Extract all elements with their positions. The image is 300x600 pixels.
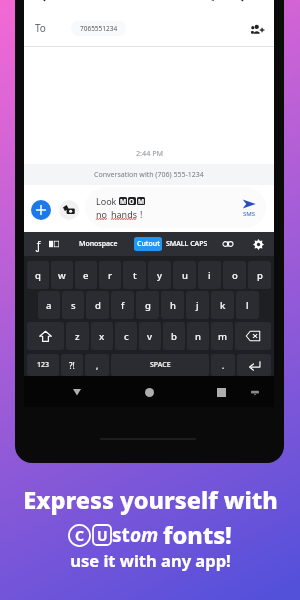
button[interactable]: Enter [237,354,271,376]
button[interactable]: c [115,322,137,350]
button[interactable]: x [91,322,113,350]
staticText: Look [96,195,119,207]
staticText: y [157,269,163,282]
button[interactable]: g [136,291,159,319]
button[interactable]: d [86,291,109,319]
button[interactable]: Backspace [235,322,271,350]
staticText: om [130,522,159,548]
staticText: 123 [37,360,50,370]
staticText: b [171,330,177,343]
staticText: O [129,197,135,205]
button[interactable]: a [38,291,60,319]
button[interactable]: v [139,322,161,350]
button[interactable]: f [111,291,134,319]
staticText: x [99,330,105,343]
button[interactable]: Add attachment [31,200,51,220]
staticText: ?! [69,360,75,371]
staticText: ! [140,208,143,220]
button[interactable]: Recent apps [211,382,231,402]
button[interactable]: Send SMS [232,191,266,225]
staticText: , [96,360,99,371]
staticText: s [71,299,76,312]
staticText: Express yourself with [23,484,278,516]
staticText: Conversation with (706) 555-1234 [94,170,204,180]
staticText: q [35,269,41,282]
button[interactable]: Camera [59,200,79,220]
button[interactable]: w [51,261,73,289]
staticText: r [108,269,113,282]
staticText: fonts! [163,519,232,551]
button[interactable]: p [248,261,271,289]
button[interactable]: Home [139,382,159,402]
button[interactable]: Call [201,0,217,3]
staticText: t [133,269,137,282]
staticText: Cutout [137,239,160,249]
staticText: 2:44 PM [136,148,163,158]
button[interactable]: Add people [247,19,267,39]
button[interactable]: Back [36,0,50,3]
button[interactable]: 123 [27,354,59,376]
button[interactable]: y [148,261,171,289]
staticText: . [222,360,225,371]
button[interactable]: s [62,291,84,319]
staticText: l [246,299,249,312]
button[interactable]: o [223,261,246,289]
staticText: g [145,299,151,312]
button[interactable]: t [123,261,146,289]
button[interactable]: Monospace [76,237,120,251]
button[interactable]: , [85,354,109,376]
staticText: h [170,299,176,312]
button[interactable]: 7065551234 [71,21,126,36]
staticText: z [75,330,80,343]
button[interactable]: Search [229,0,245,3]
button[interactable]: j [186,291,209,319]
button[interactable]: i [198,261,221,289]
staticText: U [97,526,108,545]
button[interactable]: u [173,261,196,289]
button[interactable]: q [27,261,49,289]
staticText: j [196,299,199,312]
button[interactable]: r [99,261,121,289]
staticText: f [121,299,125,312]
staticText: o [232,269,238,282]
staticText: v [147,330,153,343]
staticText: a [46,299,52,312]
button[interactable]: Shift [27,322,64,350]
button[interactable]: ?! [61,354,83,376]
staticText: e [83,269,89,282]
staticText: hands [111,208,138,220]
button[interactable]: To [30,19,50,37]
button[interactable]: l [236,291,259,319]
staticText: p [257,269,263,282]
staticText: k [220,299,226,312]
staticText: u [182,269,188,282]
button[interactable]: e [75,261,97,289]
button[interactable]: k [211,291,234,319]
button[interactable]: Hide keyboard [245,382,265,402]
staticText: i [208,269,211,282]
staticText: ƒ [36,237,41,252]
button[interactable]: Settings [250,236,266,252]
staticText: Monospace [79,239,118,249]
button[interactable]: Back [67,382,87,402]
button[interactable]: z [66,322,89,350]
button[interactable]: Bold style [46,236,62,252]
button[interactable]: Decorations [220,236,236,252]
button[interactable]: Look [96,195,220,227]
staticText: d [95,299,101,312]
staticText: 7065551234 [80,24,118,33]
button[interactable]: Font style [30,236,46,252]
staticText: To [35,21,46,35]
staticText: no [96,208,108,220]
button[interactable]: SMALL CAPS [165,237,209,251]
button[interactable]: h [161,291,184,319]
button[interactable]: n [187,322,209,350]
button[interactable]: . [211,354,235,376]
staticText: w [58,269,66,282]
button[interactable]: Cutout [134,237,162,251]
button[interactable]: SPACE [111,354,209,376]
button[interactable]: b [163,322,185,350]
button[interactable]: m [211,322,233,350]
